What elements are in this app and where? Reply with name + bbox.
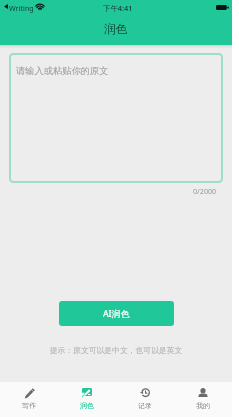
button[interactable]: 写作 [0, 382, 58, 417]
staticText: Writing [9, 3, 34, 13]
staticText: 0/2000 [193, 186, 217, 196]
staticText: 我的 [196, 401, 210, 410]
button[interactable]: 记录 [116, 382, 174, 417]
staticText: AI润色 [103, 308, 130, 320]
button[interactable]: 我的 [174, 382, 232, 417]
button[interactable]: 请输入或粘贴你的原文 [9, 53, 223, 183]
staticText: 下午4:41 [103, 3, 133, 13]
button[interactable]: AI润色 [59, 301, 174, 326]
button[interactable]: 润色 [58, 382, 116, 417]
staticText: 提示：原文可以是中文，也可以是英文 [0, 345, 232, 355]
staticText: 润色 [104, 22, 128, 37]
staticText: 润色 [80, 401, 94, 410]
staticText: 请输入或粘贴你的原文 [16, 65, 109, 77]
staticText: 写作 [22, 401, 36, 410]
staticText: 记录 [138, 401, 152, 410]
